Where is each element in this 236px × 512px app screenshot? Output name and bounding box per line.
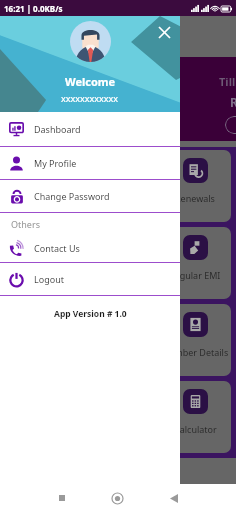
- staticText: Dashboard: [34, 123, 81, 135]
- staticText: App Version # 1.0: [54, 308, 127, 320]
- staticText: Others: [11, 218, 40, 230]
- staticText: Calculator: [174, 423, 217, 435]
- button[interactable]: Till Date Total Investment: [0, 57, 236, 141]
- staticText: 16:21 | 0.0KB/s: [4, 3, 63, 14]
- button[interactable]: Dashboard: [0, 112, 180, 146]
- button[interactable]: Home: [112, 493, 123, 504]
- button[interactable]: Deposit: [5, 227, 77, 299]
- staticText: xxxxxxxxxxxx: [61, 92, 119, 104]
- button[interactable]: Renewals: [159, 150, 231, 222]
- staticText: My Profile: [34, 157, 77, 169]
- staticText: Change Password: [34, 190, 110, 202]
- button[interactable]: Contact Us: [0, 234, 180, 262]
- staticText: Member Details: [161, 346, 229, 358]
- button[interactable]: Change Password: [0, 180, 180, 212]
- button[interactable]: Statement: [82, 227, 154, 299]
- staticText: Rs. 0.00: [230, 94, 236, 110]
- button[interactable]: Member Details: [159, 304, 231, 376]
- staticText: Apply Loan: [18, 192, 65, 204]
- button[interactable]: My Profile: [0, 147, 180, 179]
- staticText: Regular EMI: [169, 269, 221, 281]
- button[interactable]: Regular EMI: [159, 227, 231, 299]
- staticText: Contact Us: [34, 242, 80, 254]
- button[interactable]: Back: [170, 494, 178, 503]
- button[interactable]: Apply Loan: [5, 150, 77, 222]
- staticText: Deposit: [25, 269, 58, 281]
- button[interactable]: Branches: [5, 304, 77, 376]
- staticText: Till Date Total Investment: [219, 74, 236, 89]
- staticText: Loan Status: [93, 192, 143, 204]
- button[interactable]: Close drawer: [154, 22, 174, 42]
- staticText: Renewals: [175, 192, 215, 204]
- button[interactable]: Open navigation drawer: [8, 29, 24, 45]
- button[interactable]: Calculator: [159, 381, 231, 453]
- button[interactable]: View: [225, 116, 236, 134]
- button[interactable]: Loan Status: [82, 150, 154, 222]
- staticText: Logout: [34, 273, 64, 285]
- staticText: Welcome: [65, 74, 116, 89]
- button[interactable]: Schemes: [82, 304, 154, 376]
- button[interactable]: Logout: [0, 263, 180, 295]
